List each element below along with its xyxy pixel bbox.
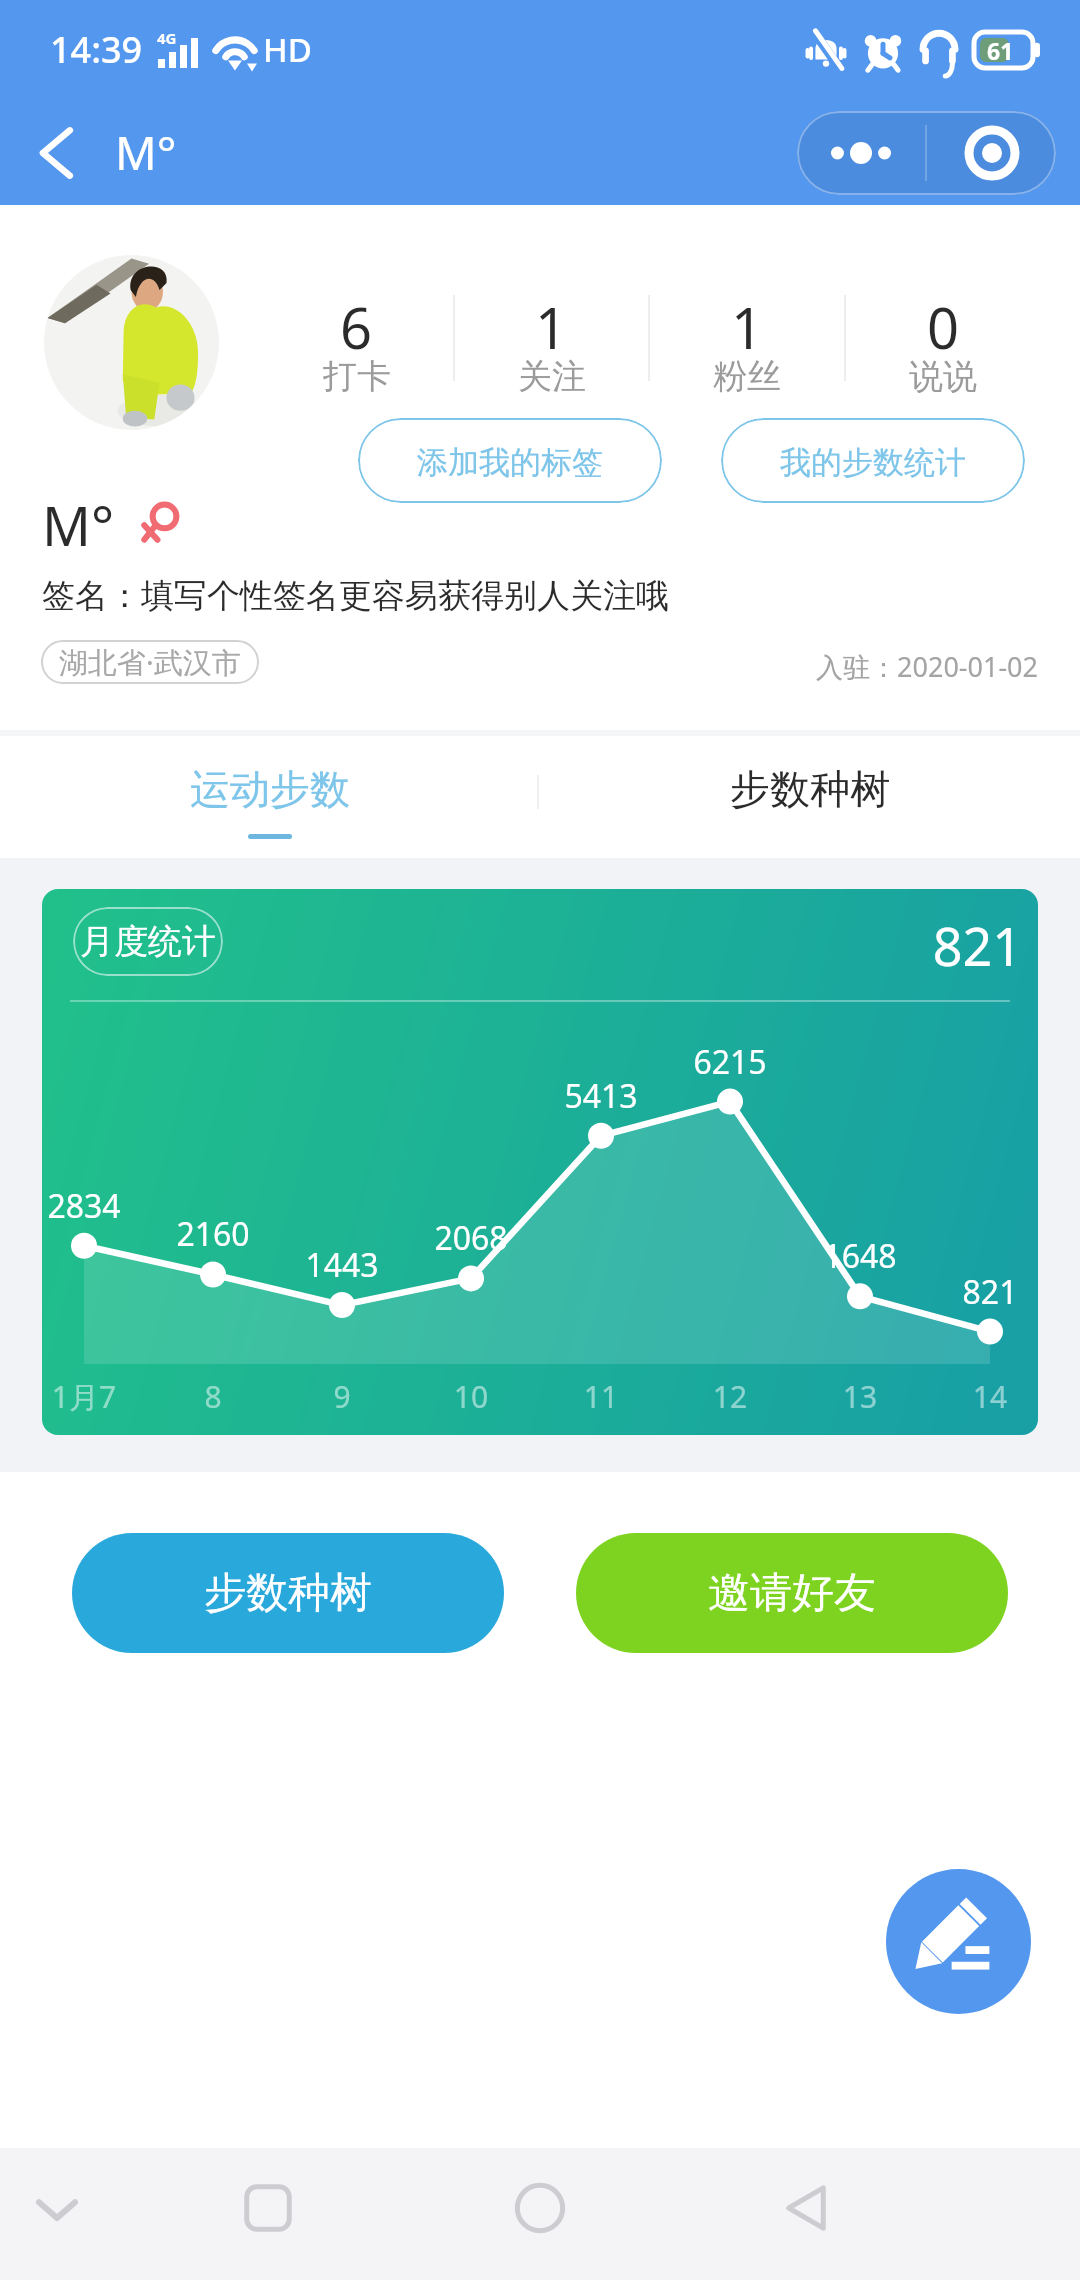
- button[interactable]: Avatar: [44, 255, 219, 430]
- staticText: 6: [340, 289, 373, 365]
- button[interactable]: 我的步数统计: [721, 418, 1025, 503]
- staticText: 10: [411, 1376, 531, 1417]
- staticText: 关注: [518, 355, 586, 398]
- staticText: 1月7: [42, 1376, 144, 1417]
- button[interactable]: 0: [846, 289, 1040, 419]
- button[interactable]: More options: [797, 111, 925, 195]
- staticText: HD: [263, 27, 312, 72]
- staticText: M°: [42, 488, 115, 558]
- button[interactable]: 添加我的标签: [358, 418, 662, 503]
- button[interactable]: 6: [260, 289, 453, 419]
- button[interactable]: Compose: [886, 1869, 1031, 2014]
- staticText: 821: [930, 1270, 1038, 1314]
- staticText: 2068: [411, 1216, 531, 1260]
- staticText: 运动步数: [190, 764, 350, 814]
- staticText: 61: [987, 35, 1014, 66]
- staticText: 9: [282, 1376, 402, 1417]
- button[interactable]: 1: [455, 289, 648, 419]
- button[interactable]: 月度统计: [73, 907, 223, 976]
- button[interactable]: 邀请好友: [576, 1533, 1008, 1653]
- staticText: 821: [912, 910, 1022, 981]
- staticText: 说说: [909, 355, 977, 398]
- staticText: 邀请好友: [708, 1567, 876, 1620]
- staticText: 14:39: [50, 25, 143, 74]
- button[interactable]: Hide keyboard: [2, 2153, 112, 2263]
- button[interactable]: 运动步数: [0, 736, 540, 858]
- staticText: 添加我的标签: [417, 443, 603, 482]
- staticText: 我的步数统计: [780, 443, 966, 482]
- staticText: 步数种树: [730, 764, 890, 814]
- button[interactable]: Back: [23, 118, 93, 188]
- staticText: 1443: [282, 1243, 402, 1287]
- staticText: 打卡: [323, 355, 391, 398]
- staticText: 签名：填写个性签名更容易获得别人关注哦: [42, 575, 669, 617]
- staticText: 1648: [800, 1234, 920, 1278]
- button[interactable]: Home: [485, 2153, 595, 2263]
- button[interactable]: Recents: [213, 2153, 323, 2263]
- staticText: 月度统计: [80, 920, 216, 963]
- staticText: 13: [800, 1376, 920, 1417]
- button[interactable]: 1: [650, 289, 844, 419]
- staticText: 1: [731, 289, 764, 365]
- button[interactable]: Back: [751, 2153, 861, 2263]
- staticText: 14: [930, 1376, 1038, 1417]
- staticText: 步数种树: [204, 1567, 372, 1620]
- staticText: 12: [670, 1376, 790, 1417]
- staticText: 2160: [153, 1212, 273, 1256]
- staticText: 湖北省·武汉市: [59, 642, 241, 682]
- staticText: 5413: [541, 1074, 661, 1118]
- staticText: 入驻：2020-01-02: [700, 648, 1038, 685]
- staticText: 11: [541, 1376, 661, 1417]
- staticText: 8: [153, 1376, 273, 1417]
- button[interactable]: 步数种树: [72, 1533, 504, 1653]
- button[interactable]: Close mini program: [927, 111, 1056, 195]
- button[interactable]: 湖北省·武汉市: [41, 640, 259, 684]
- staticText: 0: [927, 289, 960, 365]
- staticText: M°: [115, 121, 177, 184]
- staticText: 粉丝: [713, 355, 781, 398]
- staticText: 2834: [42, 1184, 144, 1228]
- staticText: 6215: [670, 1040, 790, 1084]
- staticText: 1: [535, 289, 568, 365]
- button[interactable]: 步数种树: [540, 736, 1080, 858]
- staticText: 4G: [157, 28, 177, 48]
